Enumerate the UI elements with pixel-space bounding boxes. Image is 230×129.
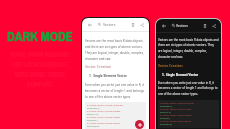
staticText: Vectors — [176, 23, 188, 28]
staticText: DARK MODE — [7, 28, 73, 46]
staticText: 1. Single Element Vector — [89, 74, 127, 78]
other: Bookmark — [131, 23, 135, 27]
staticText: print(12.5) — [87, 113, 99, 116]
button[interactable]: Back — [88, 18, 144, 31]
staticText: print(TRUE) — [87, 125, 100, 127]
staticText: Vectors — [103, 22, 116, 27]
staticText: print(22L) — [87, 119, 98, 122]
staticText: # Atomic vector of type character. — [160, 102, 195, 105]
staticText: MAKE YOUR ANDROID APP LOOK AWESOME WITH … — [10, 50, 70, 89]
staticText: Even when you write just one value in R,… — [85, 83, 146, 98]
staticText: Even when you write just one value in R,… — [158, 81, 219, 96]
staticText: # Atomic vector of type logical. — [160, 120, 192, 123]
other: Share — [140, 23, 144, 27]
staticText: # Atomic vector of type integer. — [160, 114, 192, 117]
staticText: print("abc"); — [87, 107, 100, 110]
staticText: # Atomic vector of type double. — [87, 110, 121, 113]
staticText: 1. Single Element Vector — [162, 73, 199, 77]
staticText: # Atomic vector of type double. — [160, 108, 192, 111]
staticText: print(12.5) — [160, 111, 171, 114]
other: Back — [88, 23, 92, 27]
other: Back — [162, 24, 166, 28]
staticText: Vector Creation — [158, 63, 183, 68]
staticText: # Atomic vector of type character. — [87, 104, 124, 107]
staticText: Vectors are the most basic R data object… — [158, 38, 219, 59]
staticText: print(TRUE) — [160, 123, 172, 126]
staticText: print(22L) — [160, 117, 170, 120]
staticText: # Atomic vector of type integer. — [87, 116, 121, 119]
staticText: # Atomic vector of type logical. — [87, 122, 121, 125]
staticText: print("abc"); — [160, 105, 173, 108]
other: Share — [212, 24, 216, 28]
button[interactable]: Add — [135, 120, 144, 129]
other: Bookmark — [203, 24, 207, 28]
staticText: Vector Creation — [85, 64, 112, 69]
button[interactable]: Back — [162, 19, 216, 32]
staticText: Vectors are the most basic R data object… — [85, 39, 146, 60]
